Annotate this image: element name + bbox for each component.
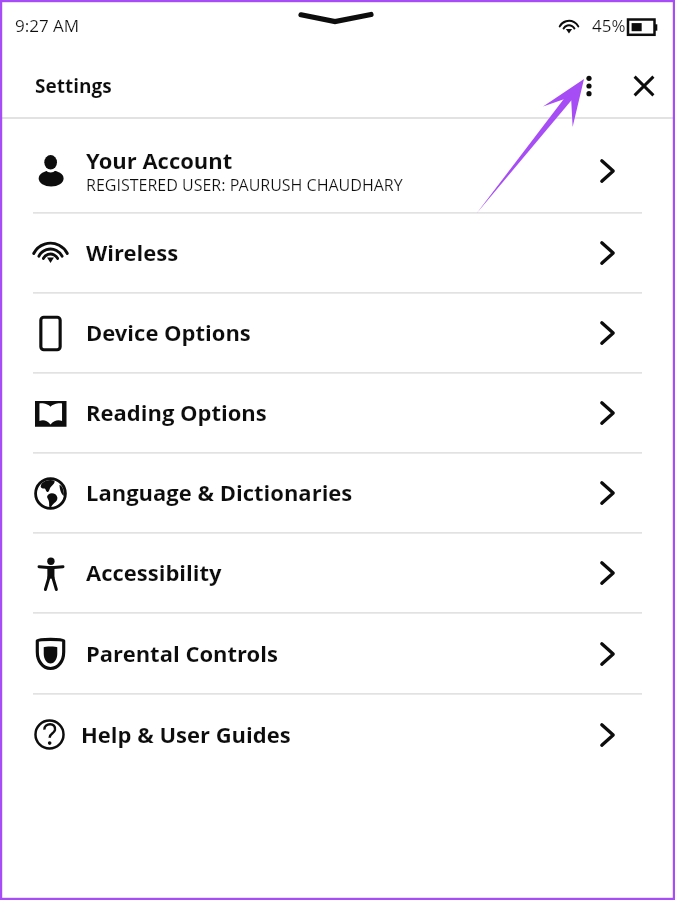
staticText: Wireless (86, 237, 179, 267)
button[interactable]: Parental Controls (0, 614, 675, 693)
staticText: 9:27 AM (15, 14, 80, 37)
staticText: Help & User Guides (81, 719, 291, 749)
button[interactable]: Help & User Guides (0, 695, 675, 774)
staticText: Device Options (86, 317, 251, 347)
staticText: REGISTERED USER: PAURUSH CHAUDHARY (86, 174, 403, 196)
button[interactable]: Language & Dictionaries (0, 454, 675, 532)
staticText: Parental Controls (86, 638, 278, 668)
button[interactable]: Accessibility (0, 534, 675, 612)
button[interactable]: Device Options (0, 294, 675, 372)
button[interactable]: Reading Options (0, 374, 675, 452)
staticText: Reading Options (86, 397, 267, 427)
staticText: Accessibility (86, 557, 222, 587)
staticText: Your Account (86, 145, 233, 175)
staticText: Settings (35, 73, 112, 99)
staticText: 45% (592, 14, 626, 37)
staticText: Language & Dictionaries (86, 477, 353, 507)
button[interactable]: More options (567, 60, 611, 112)
button[interactable]: Wireless (0, 213, 675, 292)
button[interactable]: Your Account (0, 118, 675, 212)
button[interactable]: Close (618, 60, 670, 112)
